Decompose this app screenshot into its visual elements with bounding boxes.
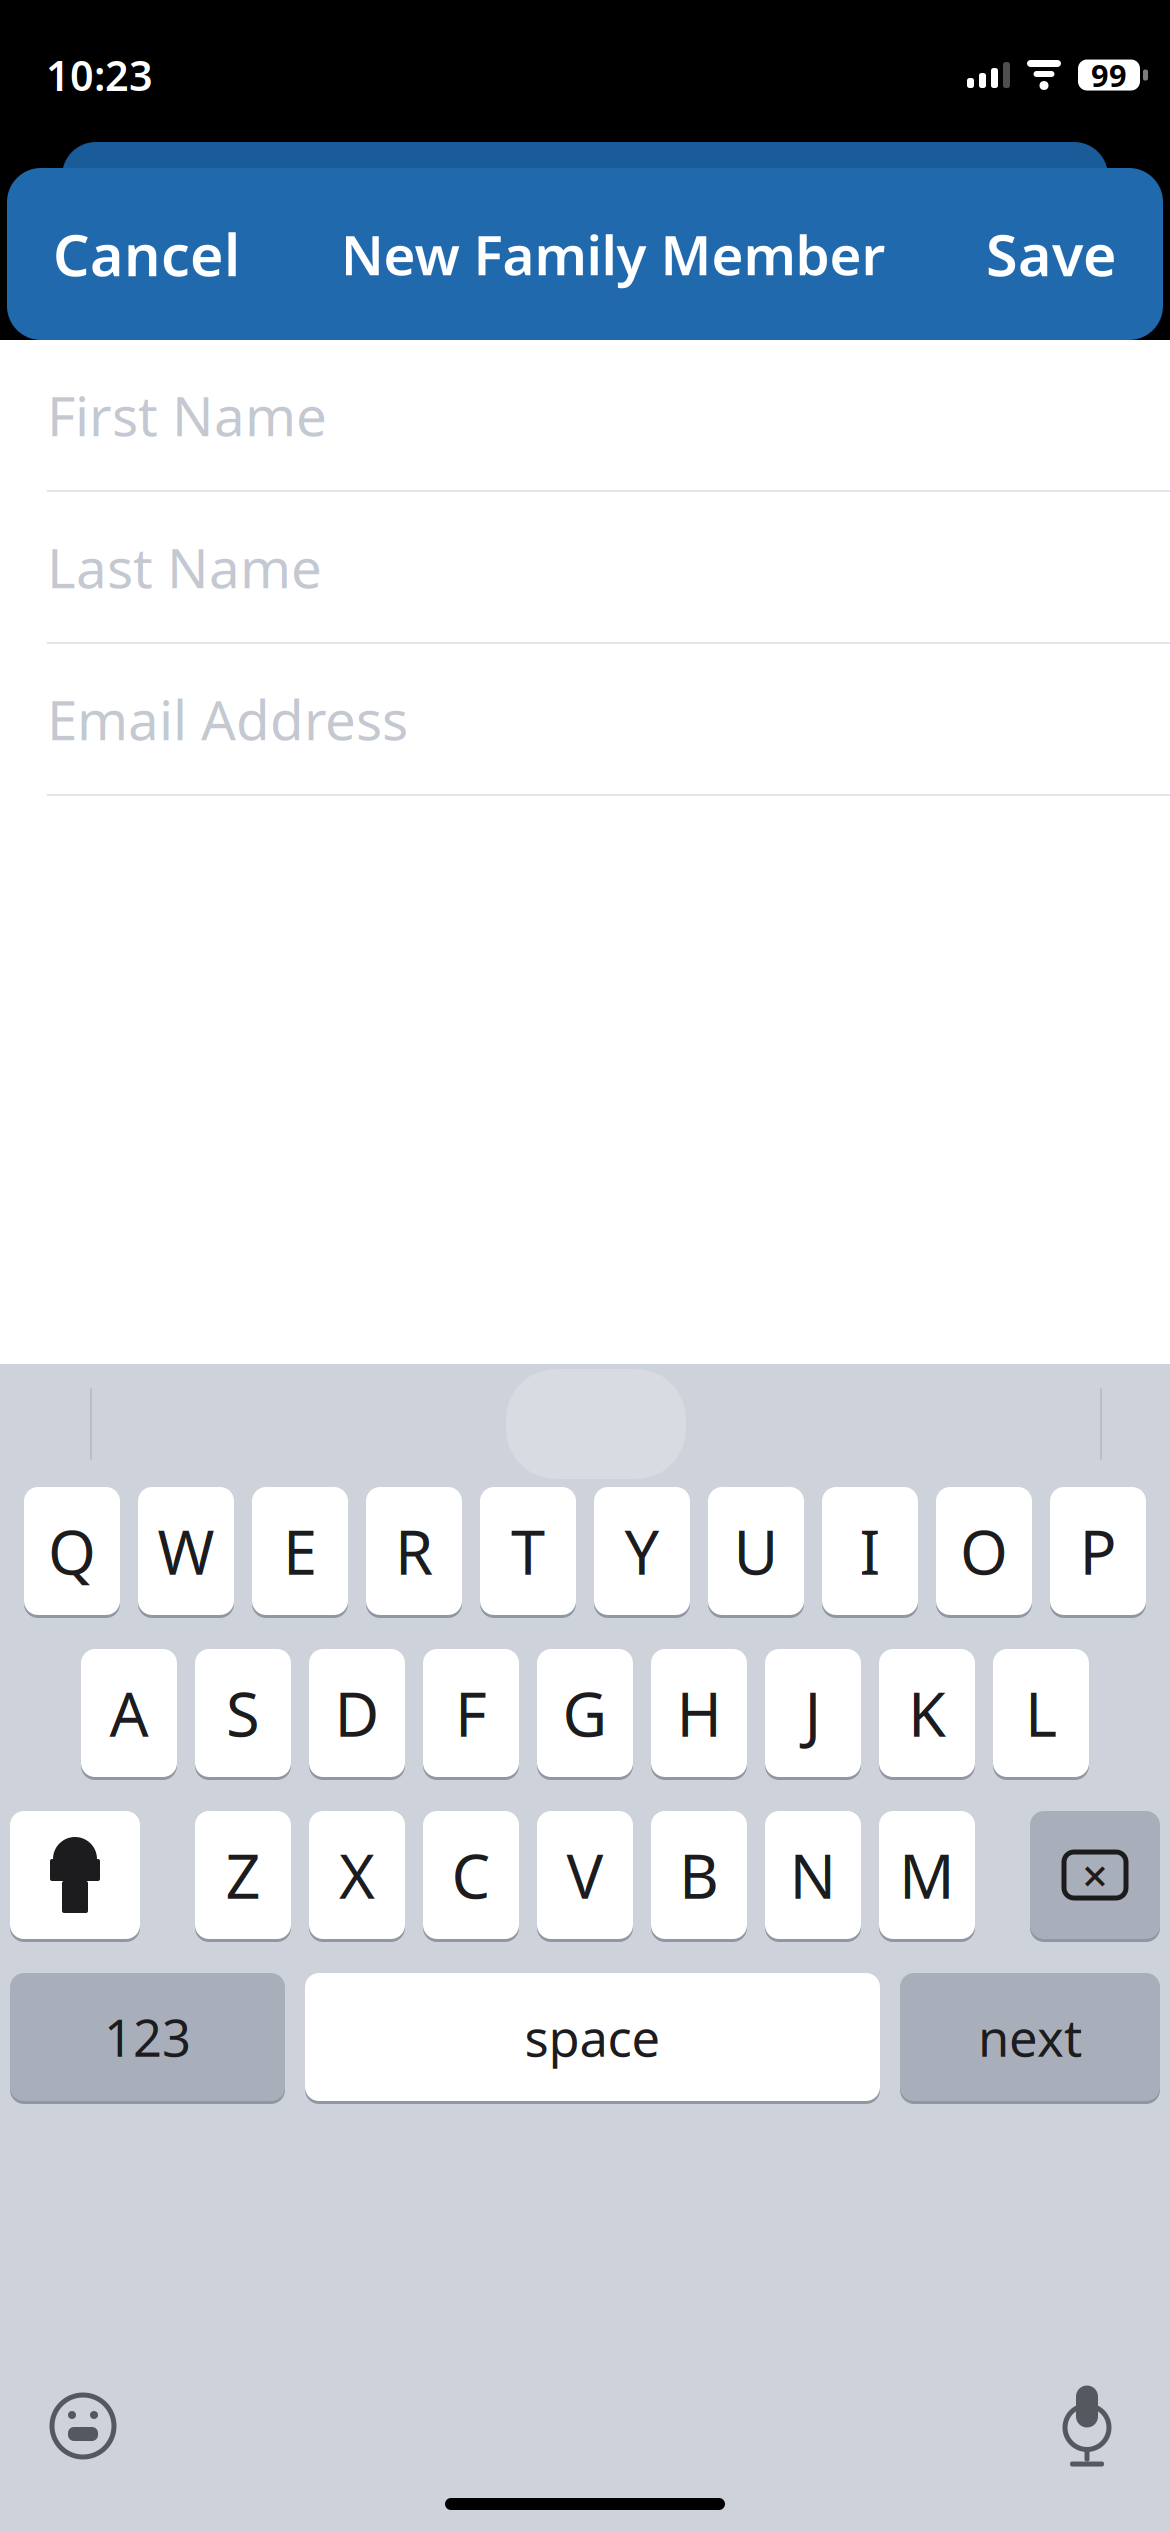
- button[interactable]: Y: [594, 1484, 690, 1618]
- button[interactable]: Emoji: [46, 2389, 120, 2463]
- staticText: A: [109, 1672, 148, 1754]
- button[interactable]: 123: [10, 1970, 285, 2104]
- staticText: V: [566, 1834, 603, 1916]
- staticText: S: [226, 1672, 260, 1754]
- staticText: C: [451, 1834, 490, 1916]
- button[interactable]: M: [879, 1808, 975, 1942]
- button[interactable]: J: [765, 1646, 861, 1780]
- staticText: R: [395, 1510, 433, 1592]
- staticText: Email Address: [47, 683, 408, 755]
- staticText: O: [960, 1510, 1008, 1592]
- button[interactable]: C: [423, 1808, 519, 1942]
- button[interactable]: A: [81, 1646, 177, 1780]
- staticText: space: [524, 2003, 660, 2071]
- button[interactable]: Save: [974, 202, 1129, 306]
- button[interactable]: Dictate: [1050, 2382, 1124, 2470]
- staticText: Last Name: [47, 531, 322, 603]
- button[interactable]: I: [822, 1484, 918, 1618]
- button[interactable]: H: [651, 1646, 747, 1780]
- button[interactable]: next: [900, 1970, 1160, 2104]
- button[interactable]: X: [309, 1808, 405, 1942]
- button[interactable]: space: [305, 1970, 880, 2104]
- button[interactable]: First Name: [0, 340, 1170, 492]
- button[interactable]: B: [651, 1808, 747, 1942]
- button[interactable]: U: [708, 1484, 804, 1618]
- staticText: ×: [1082, 1845, 1108, 1905]
- staticText: W: [157, 1510, 214, 1592]
- staticText: B: [679, 1834, 719, 1916]
- staticText: 99: [1091, 55, 1127, 95]
- staticText: K: [908, 1672, 946, 1754]
- staticText: U: [733, 1510, 778, 1592]
- staticText: next: [978, 2003, 1082, 2071]
- staticText: X: [339, 1834, 375, 1916]
- button[interactable]: N: [765, 1808, 861, 1942]
- staticText: J: [804, 1672, 821, 1754]
- button[interactable]: D: [309, 1646, 405, 1780]
- button[interactable]: S: [195, 1646, 291, 1780]
- staticText: I: [859, 1510, 880, 1592]
- button[interactable]: P: [1050, 1484, 1146, 1618]
- staticText: H: [676, 1672, 721, 1754]
- button[interactable]: E: [252, 1484, 348, 1618]
- button[interactable]: V: [537, 1808, 633, 1942]
- staticText: T: [511, 1510, 545, 1592]
- button[interactable]: Cancel: [41, 202, 252, 306]
- button[interactable]: L: [993, 1646, 1089, 1780]
- staticText: L: [1025, 1672, 1057, 1754]
- staticText: 10:23: [46, 48, 153, 102]
- staticText: G: [562, 1672, 607, 1754]
- staticText: E: [283, 1510, 317, 1592]
- staticText: M: [899, 1834, 955, 1916]
- staticText: F: [455, 1672, 487, 1754]
- button[interactable]: Z: [195, 1808, 291, 1942]
- button[interactable]: W: [138, 1484, 234, 1618]
- button[interactable]: O: [936, 1484, 1032, 1618]
- staticText: P: [1079, 1510, 1116, 1592]
- button[interactable]: F: [423, 1646, 519, 1780]
- button[interactable]: Shift: [10, 1808, 140, 1942]
- button[interactable]: K: [879, 1646, 975, 1780]
- staticText: 123: [104, 2003, 191, 2071]
- button[interactable]: R: [366, 1484, 462, 1618]
- staticText: N: [789, 1834, 836, 1916]
- staticText: D: [334, 1672, 379, 1754]
- staticText: New Family Member: [340, 218, 885, 290]
- button[interactable]: T: [480, 1484, 576, 1618]
- button[interactable]: G: [537, 1646, 633, 1780]
- button[interactable]: Email Address: [0, 644, 1170, 796]
- staticText: Z: [225, 1834, 260, 1916]
- button[interactable]: Last Name: [0, 492, 1170, 644]
- staticText: Cancel: [53, 216, 240, 292]
- staticText: Y: [624, 1510, 659, 1592]
- staticText: Save: [986, 216, 1117, 292]
- button[interactable]: Delete: [1030, 1808, 1160, 1942]
- button[interactable]: Q: [24, 1484, 120, 1618]
- staticText: Q: [48, 1510, 96, 1592]
- staticText: First Name: [47, 379, 327, 451]
